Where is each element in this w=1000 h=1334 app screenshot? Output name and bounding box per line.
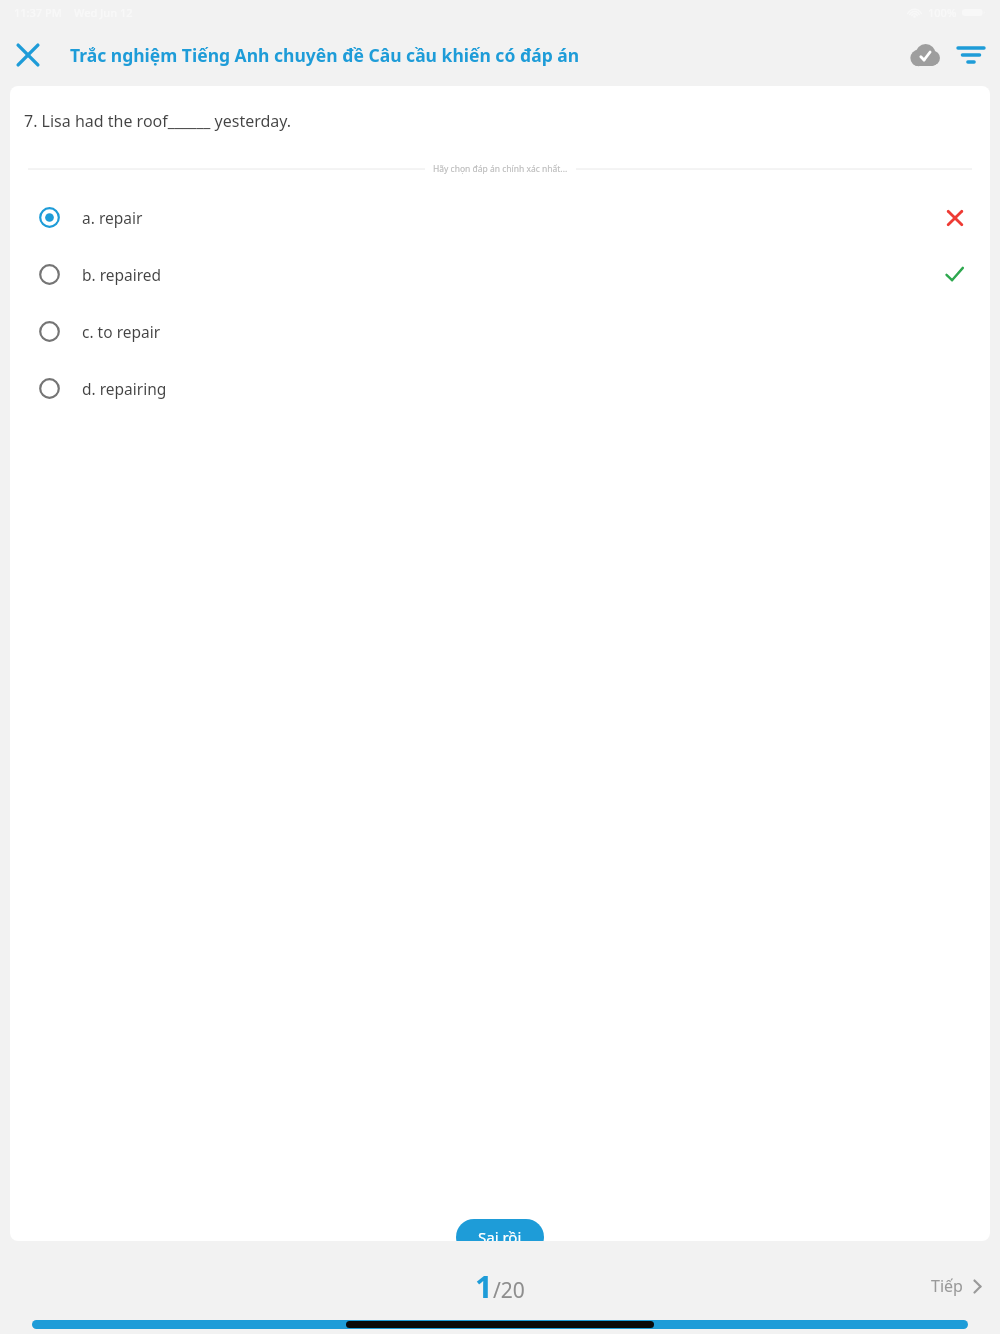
button[interactable]: Downloaded xyxy=(902,32,948,78)
button[interactable]: c. to repair xyxy=(10,303,990,360)
button[interactable]: Filter xyxy=(948,32,994,78)
staticText: 7. Lisa had the roof______ yesterday. xyxy=(24,110,292,132)
staticText: Sai rồi xyxy=(478,1227,522,1241)
staticText: /20 xyxy=(493,1276,525,1305)
staticText: c. to repair xyxy=(82,321,161,342)
staticText: Tiếp xyxy=(931,1275,963,1297)
staticText: a. repair xyxy=(82,207,143,228)
button[interactable]: b. repaired xyxy=(10,246,990,303)
staticText: 1 xyxy=(475,1265,493,1307)
button[interactable]: d. repairing xyxy=(10,360,990,417)
button[interactable]: Sai rồi xyxy=(456,1219,544,1241)
staticText: b. repaired xyxy=(82,264,162,285)
button[interactable]: a. repair xyxy=(10,189,990,246)
button[interactable]: Tiếp xyxy=(913,1265,1000,1307)
button[interactable]: Close xyxy=(0,27,56,83)
staticText: d. repairing xyxy=(82,378,167,399)
staticText: Hãy chọn đáp án chính xác nhất... xyxy=(433,163,568,175)
staticText: Trắc nghiệm Tiếng Anh chuyên đề Câu cầu … xyxy=(70,43,580,67)
